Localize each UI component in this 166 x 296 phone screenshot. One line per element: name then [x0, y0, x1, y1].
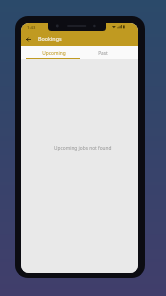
button[interactable]: Upcoming	[21, 46, 79, 59]
button[interactable]: Past	[79, 46, 138, 59]
staticText: Past	[98, 50, 108, 57]
staticText: Bookings	[38, 35, 62, 42]
staticText: Upcoming jobs not found	[54, 145, 112, 152]
staticText: 1:43	[27, 25, 36, 31]
staticText: Upcoming	[42, 50, 66, 57]
button[interactable]: Back	[22, 33, 34, 45]
